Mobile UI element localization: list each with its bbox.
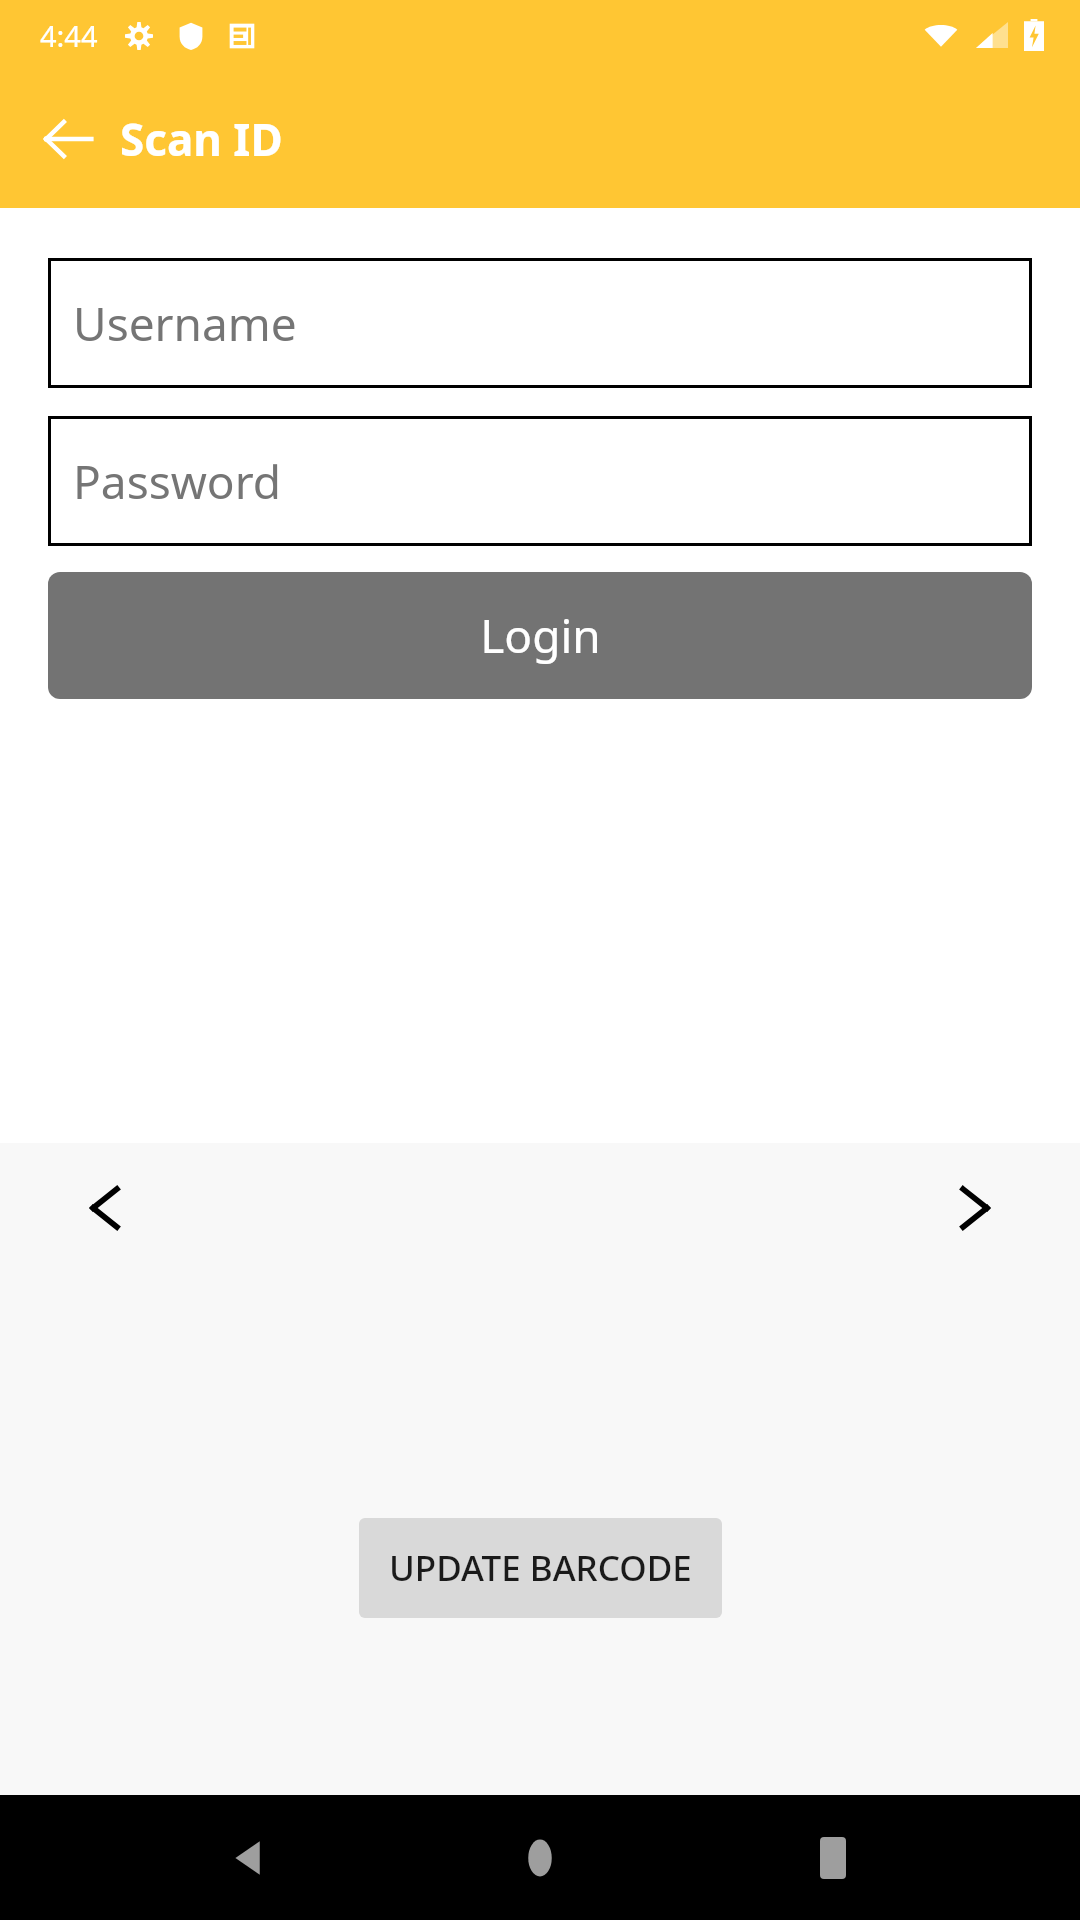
staticText: Password bbox=[73, 450, 282, 513]
button[interactable]: Recent apps bbox=[788, 1813, 878, 1903]
staticText: Scan ID bbox=[120, 109, 283, 169]
button[interactable]: Password bbox=[48, 416, 1032, 546]
button[interactable]: Back bbox=[203, 1813, 293, 1903]
staticText: 4:44 bbox=[40, 16, 98, 55]
button[interactable]: Next bbox=[930, 1163, 1020, 1253]
button[interactable]: Username bbox=[48, 258, 1032, 388]
button[interactable]: Home bbox=[495, 1813, 585, 1903]
button[interactable]: Login bbox=[48, 572, 1032, 699]
staticText: Username bbox=[73, 292, 297, 355]
button[interactable]: Previous bbox=[60, 1163, 150, 1253]
staticText: Login bbox=[480, 604, 601, 667]
button[interactable]: Back bbox=[30, 101, 106, 177]
staticText: UPDATE BARCODE bbox=[389, 1544, 692, 1592]
button[interactable]: UPDATE BARCODE bbox=[359, 1518, 722, 1618]
